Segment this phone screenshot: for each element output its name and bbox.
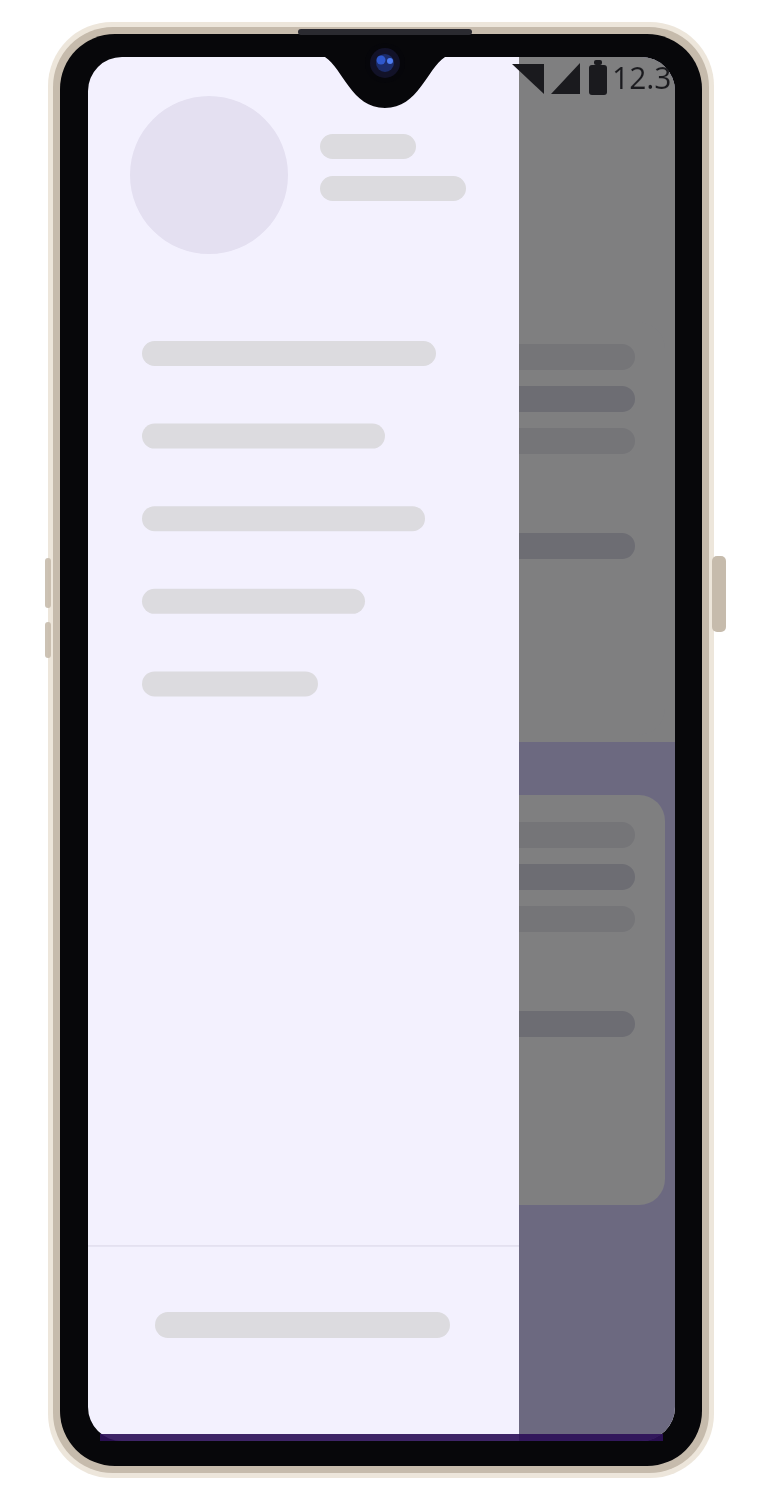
staticText: 12.30 [612,57,676,97]
button[interactable]: Profile picture [130,96,288,254]
button[interactable]: Primary action [142,1288,562,1360]
button[interactable]: Content card 1 [142,322,665,735]
button[interactable]: Content card 2 [142,795,665,1205]
